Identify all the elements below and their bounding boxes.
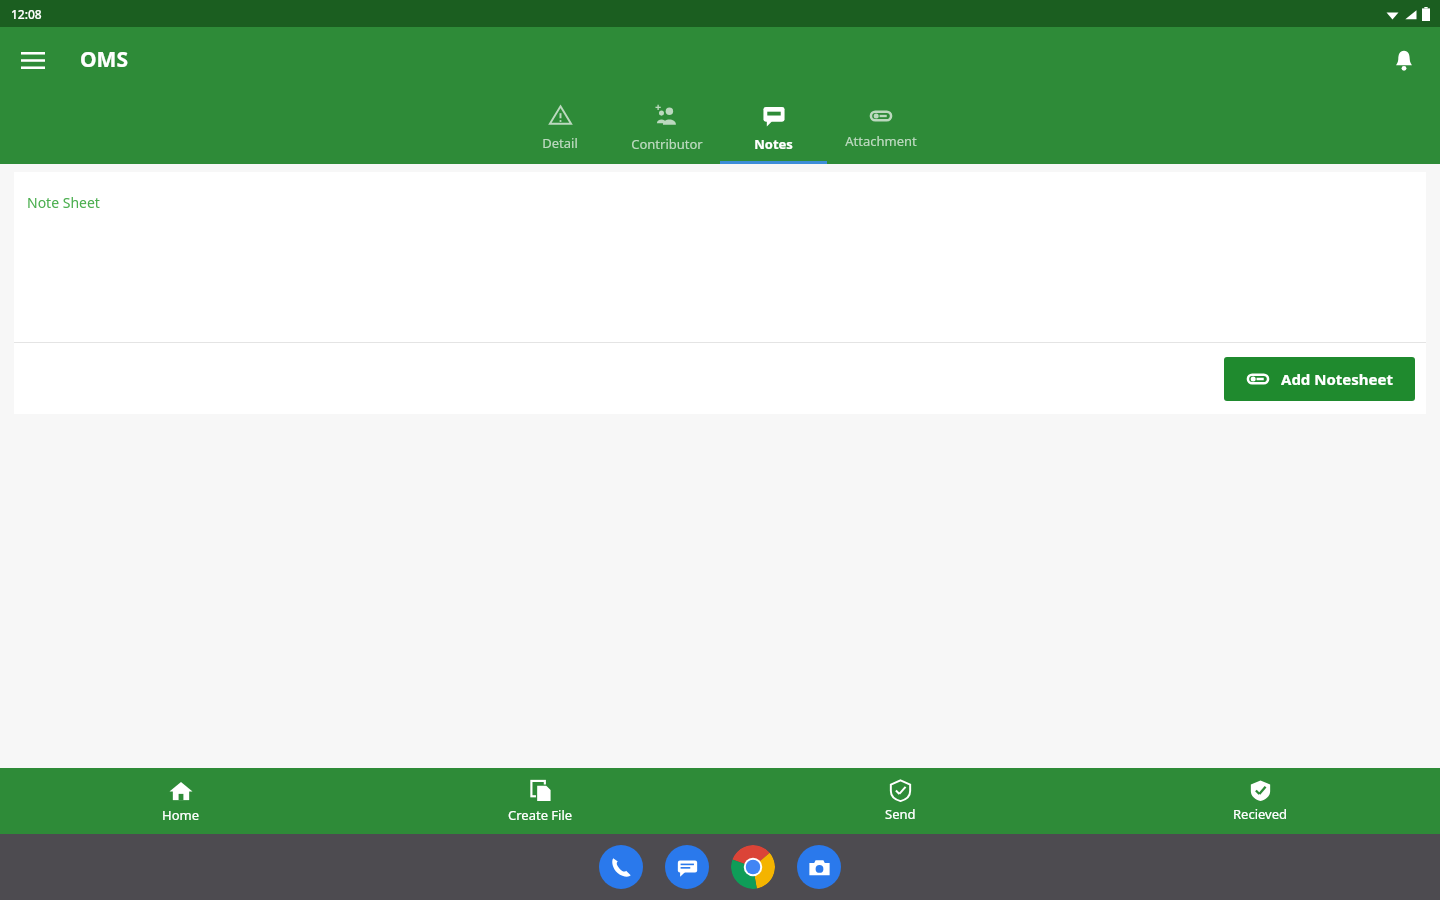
staticText: Contributor — [631, 135, 703, 153]
button[interactable]: Recieved — [1080, 768, 1440, 834]
button[interactable]: Camera — [797, 845, 841, 889]
button[interactable]: Contributor — [613, 92, 720, 164]
button[interactable]: Open navigation menu — [12, 39, 54, 81]
button[interactable]: Detail — [506, 92, 613, 164]
staticText: Create File — [508, 806, 573, 824]
button[interactable]: Notes — [720, 92, 827, 164]
button[interactable]: Chrome — [731, 845, 775, 889]
button[interactable]: Notifications — [1382, 38, 1426, 82]
staticText: Notes — [754, 135, 793, 153]
staticText: 12:08 — [11, 6, 42, 22]
button[interactable]: Home — [0, 768, 360, 834]
button[interactable]: Add Notesheet — [1224, 357, 1415, 401]
staticText: Send — [885, 805, 916, 823]
staticText: Note Sheet — [27, 193, 100, 212]
staticText: OMS — [80, 45, 128, 74]
button[interactable]: Attachment — [827, 92, 934, 164]
button[interactable]: Send — [720, 768, 1080, 834]
button[interactable]: Messages — [665, 845, 709, 889]
staticText: Home — [162, 806, 199, 824]
button[interactable]: Phone — [599, 845, 643, 889]
staticText: Recieved — [1233, 805, 1288, 823]
button[interactable]: Create File — [360, 768, 720, 834]
staticText: Detail — [542, 134, 578, 152]
staticText: Add Notesheet — [1281, 369, 1393, 389]
staticText: Attachment — [845, 132, 917, 150]
